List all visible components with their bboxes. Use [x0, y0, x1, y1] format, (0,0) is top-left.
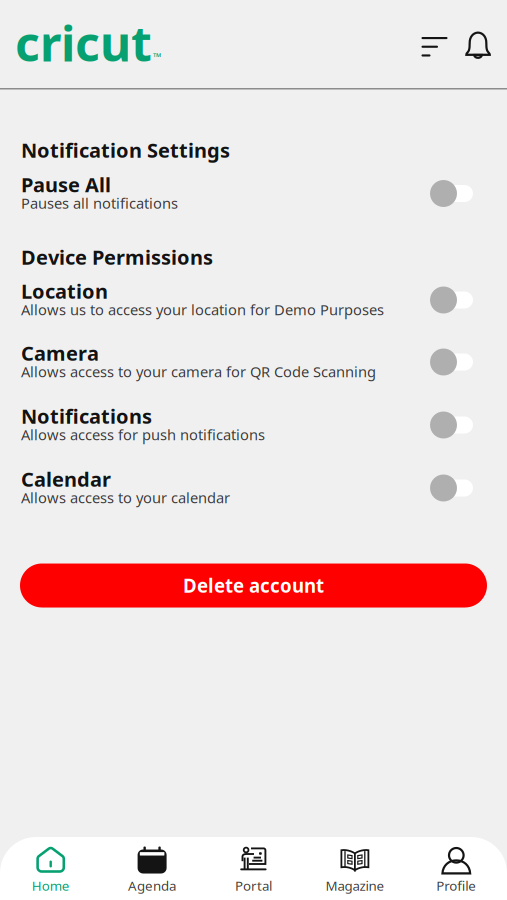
button[interactable]: Profile	[406, 837, 507, 900]
staticText: Magazine	[325, 877, 384, 894]
button[interactable]: Delete account	[20, 563, 487, 607]
button[interactable]: Magazine	[304, 837, 406, 900]
button[interactable]: Home	[0, 837, 101, 900]
staticText: Portal	[235, 877, 272, 894]
staticText: Device Permissions	[21, 244, 213, 270]
button[interactable]: Calendar	[0, 469, 507, 504]
staticText: Notifications	[21, 403, 152, 429]
button[interactable]: Location	[0, 281, 507, 316]
button[interactable]: Sort and filter	[412, 21, 452, 67]
staticText: Allows us to access your location for De…	[21, 300, 384, 319]
staticText: Allows access to your calendar	[21, 488, 230, 507]
button[interactable]: Camera	[0, 343, 507, 378]
staticText: Profile	[436, 877, 476, 894]
staticText: Allows access to your camera for QR Code…	[21, 362, 376, 381]
button[interactable]: Notifications	[458, 21, 494, 67]
button[interactable]: Agenda	[101, 837, 203, 900]
staticText: Location	[21, 278, 108, 304]
staticText: Pause All	[21, 171, 111, 198]
staticText: ™	[153, 50, 161, 64]
button[interactable]: Pause All	[0, 175, 507, 210]
staticText: Delete account	[183, 573, 324, 598]
button[interactable]: Notifications	[0, 406, 507, 441]
staticText: Notification Settings	[21, 137, 230, 163]
staticText: Camera	[21, 340, 99, 366]
staticText: Pauses all notifications	[21, 193, 178, 213]
staticText: Calendar	[21, 466, 111, 492]
staticText: Agenda	[128, 877, 176, 894]
staticText: cricut	[15, 11, 152, 75]
staticText: Allows access for push notifications	[21, 425, 265, 444]
staticText: Home	[32, 877, 70, 894]
button[interactable]: Portal	[203, 837, 304, 900]
